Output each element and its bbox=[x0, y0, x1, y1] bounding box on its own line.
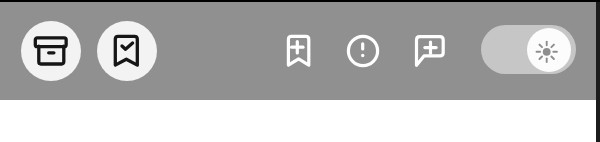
button[interactable]: Brightness bbox=[481, 25, 576, 74]
button[interactable]: Add bookmark bbox=[278, 30, 320, 72]
button[interactable]: Archive bbox=[21, 21, 81, 81]
button[interactable]: Info bbox=[343, 30, 383, 70]
button[interactable]: Saved bbox=[97, 21, 157, 81]
button[interactable]: Add comment bbox=[409, 30, 451, 72]
